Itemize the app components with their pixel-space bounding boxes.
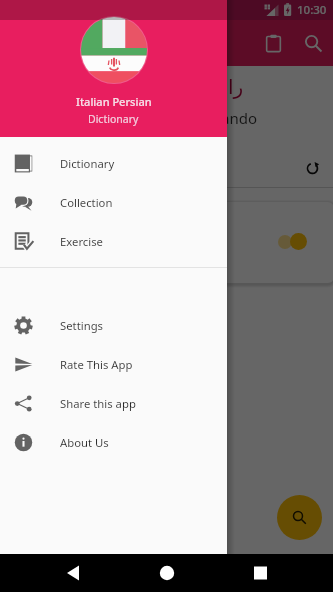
button[interactable]: Exercise: [0, 222, 227, 261]
staticText: Exercise: [60, 234, 103, 249]
button[interactable]: Clipboard: [253, 23, 293, 63]
staticText: Dictionary: [88, 112, 139, 126]
button[interactable]: Rate This App: [0, 345, 227, 384]
staticText: Rate This App: [60, 357, 133, 372]
button[interactable]: Share this app: [0, 384, 227, 423]
button[interactable]: [9, 202, 333, 283]
staticText: Italian Persian: [76, 94, 152, 109]
staticText: Dictionary: [60, 156, 115, 171]
button[interactable]: Refresh: [293, 149, 331, 187]
button[interactable]: Settings: [0, 306, 227, 345]
button[interactable]: Dictionary: [0, 144, 227, 183]
staticText: Settings: [60, 318, 103, 333]
staticText: About Us: [60, 435, 109, 450]
staticText: 10:30: [297, 2, 327, 18]
button[interactable]: Collection: [0, 183, 227, 222]
button[interactable]: Search: [277, 495, 322, 540]
button[interactable]: Search: [293, 23, 333, 63]
staticText: را: [228, 75, 244, 98]
staticText: girando: [202, 108, 257, 128]
staticText: Collection: [60, 195, 113, 210]
staticText: Share this app: [60, 396, 136, 411]
button[interactable]: About Us: [0, 423, 227, 462]
